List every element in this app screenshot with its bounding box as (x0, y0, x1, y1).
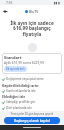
staticText: Dört planlarda izle (6, 106, 32, 110)
staticText: İlk ay indirimli (6, 67, 25, 71)
button[interactable]: Başlangıç olarak kaydol (4, 117, 60, 124)
button[interactable]: Back (1, 7, 9, 15)
staticText: Sahipliği profilde gör (6, 100, 36, 104)
staticText: Değiştirme veya iptal etme (6, 77, 44, 81)
staticText: Yeni üyeler 30 gün boyunca geçerli (0, 112, 64, 116)
button[interactable]: Standart (2, 53, 62, 74)
staticText: 7:16 (6, 1, 13, 5)
staticText: Kaydedilebilirliği artır (2, 83, 39, 88)
staticText: Standart (4, 55, 22, 60)
staticText: BluTV (29, 9, 39, 14)
button[interactable]: Kısıtlı reklamlarla izle (2, 89, 62, 93)
staticText: Aylık ₺16,99 sonra ₺229,99 (4, 61, 44, 65)
button[interactable]: Değiştirme veya iptal etme (2, 77, 62, 81)
button[interactable]: Dört planlarda izle (2, 106, 62, 110)
staticText: Kısıtlı reklamlarla izle (6, 89, 36, 93)
staticText: Başlangıç olarak kaydol (14, 119, 50, 123)
staticText: ▮▮ ▮ (54, 1, 61, 5)
button[interactable]: Sahipliği profilde gör (2, 100, 62, 104)
staticText: İlk ayın için sadece ₺16,99 başlangıç fi… (5, 20, 59, 38)
staticText: Eklediğini izle (2, 94, 26, 99)
